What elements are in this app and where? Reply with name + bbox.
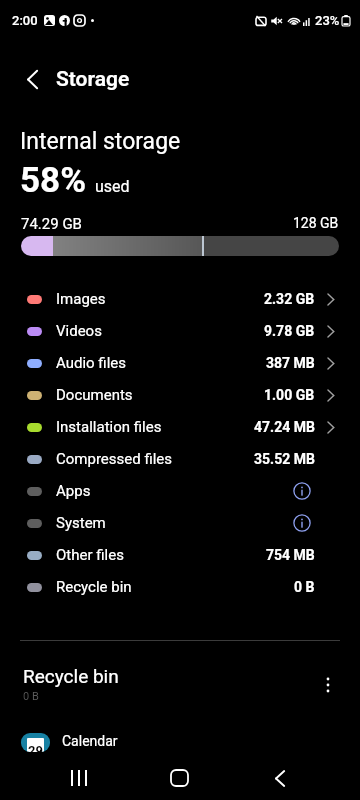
staticText: Storage bbox=[56, 67, 130, 92]
staticText: Audio files bbox=[56, 354, 127, 372]
button[interactable]: Compressed files bbox=[0, 443, 360, 475]
button[interactable]: Audio files bbox=[0, 347, 360, 379]
staticText: Apps bbox=[56, 482, 91, 500]
staticText: System bbox=[56, 514, 106, 532]
other: Info bbox=[293, 514, 311, 532]
button[interactable]: Documents bbox=[0, 379, 360, 411]
button[interactable]: Videos bbox=[0, 315, 360, 347]
staticText: 2.32 GB bbox=[264, 291, 315, 307]
button[interactable]: Recent apps bbox=[55, 756, 103, 800]
staticText: used bbox=[95, 177, 130, 196]
staticText: 35.52 MB bbox=[254, 451, 315, 467]
staticText: 387 MB bbox=[266, 355, 315, 371]
staticText: Recycle bin bbox=[56, 578, 132, 596]
staticText: Other files bbox=[56, 546, 124, 564]
staticText: 1.00 GB bbox=[264, 387, 315, 403]
button[interactable]: More options bbox=[312, 669, 344, 701]
staticText: Compressed files bbox=[56, 450, 173, 468]
button[interactable]: Apps bbox=[0, 475, 360, 507]
button[interactable]: Other files bbox=[0, 539, 360, 571]
button[interactable]: Navigate up bbox=[7, 56, 57, 102]
staticText: 2:00 bbox=[12, 13, 38, 28]
staticText: Documents bbox=[56, 386, 133, 404]
staticText: Installation files bbox=[56, 418, 162, 436]
staticText: Videos bbox=[56, 322, 102, 340]
button[interactable]: Installation files bbox=[0, 411, 360, 443]
staticText: 29 bbox=[28, 743, 43, 752]
staticText: 9.78 GB bbox=[264, 323, 315, 339]
button[interactable]: System bbox=[0, 507, 360, 539]
staticText: 754 MB bbox=[266, 547, 315, 563]
staticText: Calendar bbox=[62, 733, 118, 749]
button[interactable]: Home bbox=[155, 756, 203, 800]
staticText: 58% bbox=[20, 160, 87, 201]
staticText: 23% bbox=[315, 13, 340, 28]
staticText: 47.24 MB bbox=[254, 419, 315, 435]
button[interactable]: Images bbox=[0, 283, 360, 315]
staticText: Internal storage bbox=[20, 128, 181, 155]
button[interactable]: Recycle bin bbox=[0, 571, 360, 603]
staticText: Images bbox=[56, 290, 106, 308]
button[interactable]: 29 bbox=[0, 733, 360, 752]
staticText: 128 GB bbox=[293, 215, 339, 231]
staticText: 0 B bbox=[23, 690, 39, 703]
staticText: Recycle bin bbox=[23, 665, 119, 687]
other: Info bbox=[293, 482, 311, 500]
staticText: 74.29 GB bbox=[21, 215, 82, 233]
staticText: 0 B bbox=[294, 579, 315, 595]
button[interactable]: Back bbox=[256, 756, 304, 800]
